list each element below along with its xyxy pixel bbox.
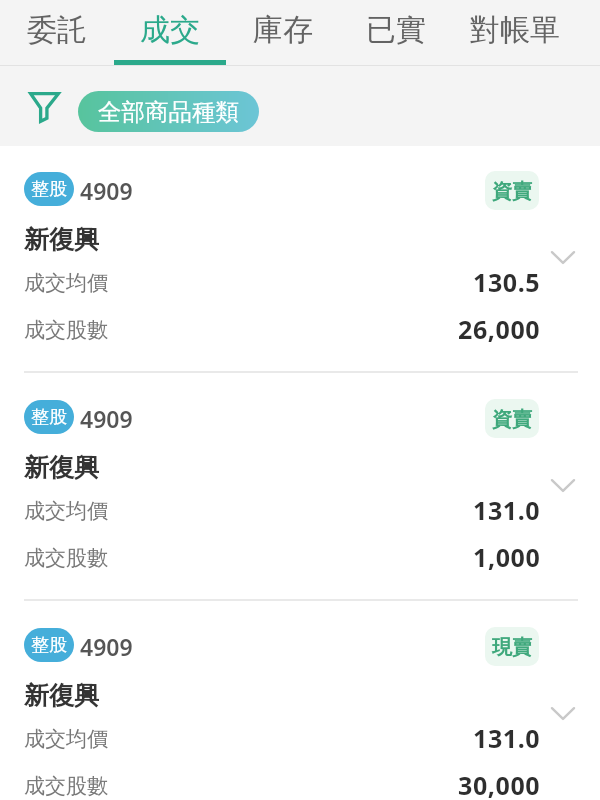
staticText: 成交均價	[24, 498, 108, 524]
button[interactable]: 整股	[0, 374, 600, 602]
staticText: 全部商品種類	[98, 97, 239, 127]
button[interactable]: 庫存	[226, 0, 339, 66]
button[interactable]: 資賣	[485, 171, 539, 210]
staticText: 新復興	[24, 452, 99, 483]
staticText: 131.0	[473, 721, 541, 755]
staticText: 4909	[80, 403, 133, 434]
staticText: 委託	[27, 11, 87, 49]
button[interactable]: 資賣	[485, 399, 539, 438]
staticText: 整股	[31, 634, 67, 657]
staticText: 30,000	[458, 768, 541, 800]
staticText: 26,000	[458, 312, 541, 346]
staticText: 資賣	[492, 407, 532, 432]
staticText: 整股	[31, 178, 67, 201]
button[interactable]: 已實	[339, 0, 452, 66]
staticText: 131.0	[473, 493, 541, 527]
staticText: 4909	[80, 631, 133, 662]
button[interactable]: Expand row	[543, 465, 583, 505]
button[interactable]: Filter	[22, 85, 66, 129]
button[interactable]: Expand row	[543, 693, 583, 733]
button[interactable]: 整股	[0, 146, 600, 374]
button[interactable]: 委託	[0, 0, 113, 66]
button[interactable]: 現賣	[485, 627, 539, 666]
staticText: 整股	[31, 406, 67, 429]
button[interactable]: Expand row	[543, 237, 583, 277]
staticText: 新復興	[24, 680, 99, 711]
staticText: 資賣	[492, 179, 532, 204]
button[interactable]: 整股	[0, 602, 600, 800]
staticText: 對帳單	[470, 11, 560, 49]
staticText: 130.5	[473, 265, 541, 299]
staticText: 4909	[80, 175, 133, 206]
staticText: 庫存	[253, 11, 313, 49]
button[interactable]: 對帳單	[452, 0, 578, 66]
button[interactable]: 成交	[113, 0, 226, 66]
staticText: 已實	[366, 11, 426, 49]
staticText: 現賣	[492, 635, 532, 660]
staticText: 1,000	[473, 540, 541, 574]
staticText: 新復興	[24, 224, 99, 255]
staticText: 成交均價	[24, 726, 108, 752]
staticText: 成交股數	[24, 317, 108, 343]
staticText: 成交股數	[24, 773, 108, 799]
staticText: 成交股數	[24, 545, 108, 571]
staticText: 成交均價	[24, 270, 108, 296]
staticText: 成交	[140, 11, 200, 49]
button[interactable]: 全部商品種類	[78, 91, 259, 132]
